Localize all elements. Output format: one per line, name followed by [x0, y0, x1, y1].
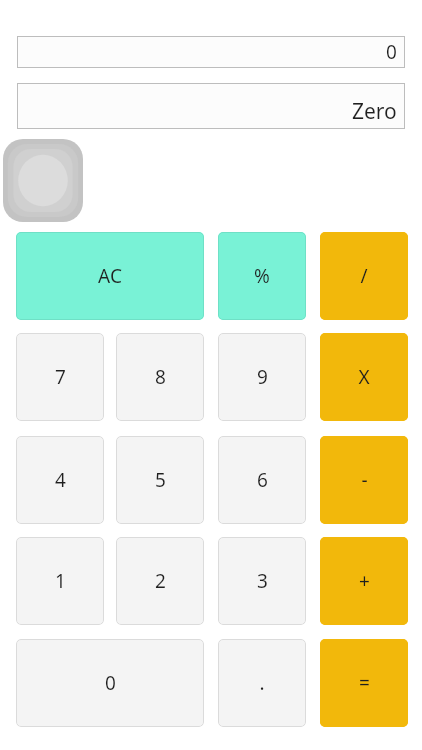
button[interactable]: 6 — [218, 436, 306, 524]
staticText: 3 — [257, 568, 268, 594]
button[interactable]: Toggle — [3, 139, 83, 222]
staticText: 0 — [105, 670, 116, 696]
staticText: % — [254, 263, 270, 289]
button[interactable]: = — [320, 639, 408, 727]
button[interactable]: / — [320, 232, 408, 320]
staticText: - — [361, 467, 368, 493]
staticText: . — [259, 670, 265, 696]
button[interactable]: 4 — [16, 436, 104, 524]
staticText: 1 — [55, 568, 66, 594]
staticText: 4 — [55, 467, 66, 493]
staticText: 7 — [55, 364, 66, 390]
staticText: Zero — [352, 97, 397, 126]
button[interactable]: 0 — [17, 36, 405, 68]
staticText: X — [358, 364, 370, 390]
staticText: + — [359, 568, 370, 594]
button[interactable]: 9 — [218, 333, 306, 421]
button[interactable]: 7 — [16, 333, 104, 421]
button[interactable]: 8 — [116, 333, 204, 421]
button[interactable]: 0 — [16, 639, 204, 727]
button[interactable]: 3 — [218, 537, 306, 625]
button[interactable]: 2 — [116, 537, 204, 625]
button[interactable]: - — [320, 436, 408, 524]
staticText: = — [359, 670, 370, 696]
button[interactable]: AC — [16, 232, 204, 320]
button[interactable]: Zero — [17, 83, 405, 129]
staticText: 2 — [155, 568, 166, 594]
staticText: 5 — [155, 467, 166, 493]
staticText: 9 — [257, 364, 268, 390]
button[interactable]: X — [320, 333, 408, 421]
button[interactable]: . — [218, 639, 306, 727]
staticText: 8 — [155, 364, 166, 390]
button[interactable]: % — [218, 232, 306, 320]
staticText: AC — [98, 263, 122, 289]
button[interactable]: 1 — [16, 537, 104, 625]
staticText: / — [360, 263, 368, 289]
staticText: 6 — [257, 467, 268, 493]
button[interactable]: 5 — [116, 436, 204, 524]
button[interactable]: + — [320, 537, 408, 625]
staticText: 0 — [386, 39, 397, 65]
